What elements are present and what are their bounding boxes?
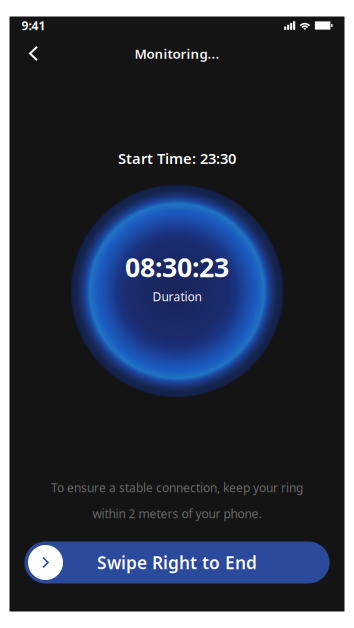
staticText: Start Time: 23:30	[118, 148, 236, 168]
button[interactable]: Back	[18, 36, 48, 70]
staticText: 08:30:23	[125, 249, 229, 285]
staticText: Duration	[152, 289, 201, 305]
staticText: Swipe Right to End	[97, 551, 257, 574]
staticText: within 2 meters of your phone.	[92, 506, 261, 521]
staticText: 9:41	[21, 17, 45, 33]
staticText: Monitoring...	[134, 45, 219, 62]
button[interactable]: Swipe Right to End	[24, 541, 329, 583]
staticText: To ensure a stable connection, keep your…	[51, 480, 303, 495]
